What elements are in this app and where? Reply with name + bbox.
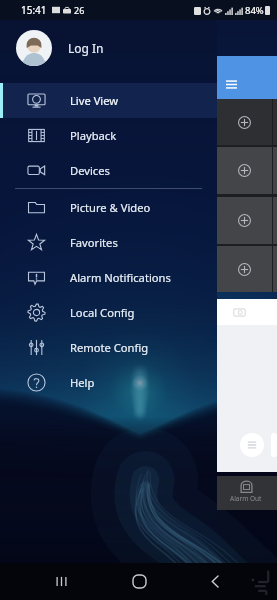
button[interactable]: Favorites xyxy=(0,225,217,260)
button[interactable]: Alarm Out xyxy=(230,479,262,503)
button[interactable]: Add camera xyxy=(217,246,272,292)
button[interactable]: Add camera xyxy=(217,99,272,145)
button[interactable]: Local Config xyxy=(0,295,217,330)
button[interactable]: Playback xyxy=(0,118,217,153)
staticText: 26 xyxy=(74,4,85,16)
button[interactable]: Picture & Video xyxy=(0,190,217,225)
button[interactable]: Add camera xyxy=(217,197,272,244)
staticText: Picture & Video xyxy=(70,200,151,215)
staticText: Live View xyxy=(70,93,119,108)
staticText: Playback xyxy=(70,128,117,143)
button[interactable]: Back xyxy=(194,563,236,600)
staticText: Remote Config xyxy=(70,340,149,355)
button[interactable]: Alarm Notifications xyxy=(0,260,217,295)
staticText: 15:41 xyxy=(21,3,47,17)
staticText: 84% xyxy=(245,4,264,17)
staticText: Alarm Notifications xyxy=(70,270,171,285)
button[interactable]: Snapshot xyxy=(230,303,248,321)
staticText: Help xyxy=(70,375,95,390)
button[interactable]: Help xyxy=(0,365,217,400)
staticText: Favorites xyxy=(70,235,118,250)
button[interactable]: Recents xyxy=(40,563,82,600)
button[interactable]: Home xyxy=(118,563,160,600)
button[interactable]: Remote Config xyxy=(0,330,217,365)
button[interactable]: Add camera xyxy=(217,147,272,194)
button[interactable]: Live View xyxy=(0,83,217,118)
staticText: Alarm Out xyxy=(230,494,262,503)
staticText: Log In xyxy=(68,40,104,56)
staticText: Local Config xyxy=(70,305,135,320)
staticText: Devices xyxy=(70,163,110,178)
button[interactable]: Log In xyxy=(0,20,217,76)
button[interactable]: Devices xyxy=(0,153,217,188)
button[interactable]: Stream quality xyxy=(240,433,264,457)
button[interactable]: Open navigation menu xyxy=(222,75,240,93)
